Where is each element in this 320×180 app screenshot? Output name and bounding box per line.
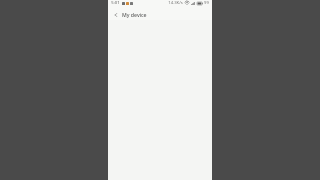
staticText: My device	[122, 11, 147, 18]
staticText: 99	[204, 0, 209, 6]
staticText: 14.3K/s	[168, 0, 183, 6]
button[interactable]: Back	[111, 10, 120, 19]
staticText: 5:01	[111, 0, 120, 6]
